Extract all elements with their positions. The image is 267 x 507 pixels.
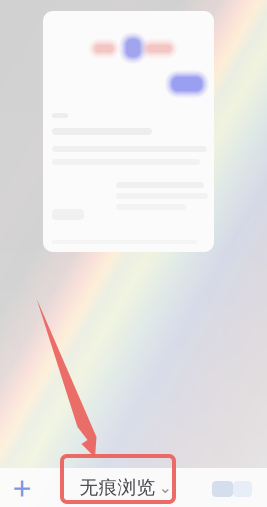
button[interactable]: New Tab bbox=[0, 468, 44, 507]
staticText: 无痕浏览 bbox=[79, 476, 155, 499]
button[interactable]: 无痕浏览 bbox=[79, 468, 171, 507]
staticText: + bbox=[12, 465, 31, 507]
staticText: ⌄ bbox=[158, 478, 171, 497]
